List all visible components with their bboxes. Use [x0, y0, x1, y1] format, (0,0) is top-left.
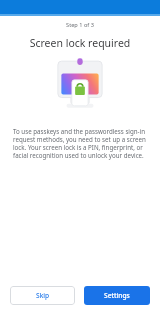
staticText: Step 1 of 3	[0, 21, 160, 29]
other: Screen lock illustration	[53, 58, 107, 110]
staticText: Settings	[104, 291, 130, 300]
button[interactable]: Settings	[84, 286, 150, 305]
button[interactable]: Skip	[10, 286, 75, 305]
staticText: Skip	[36, 291, 50, 300]
staticText: To use passkeys and the passwordless sig…	[13, 127, 147, 159]
staticText: Screen lock required	[0, 36, 160, 50]
